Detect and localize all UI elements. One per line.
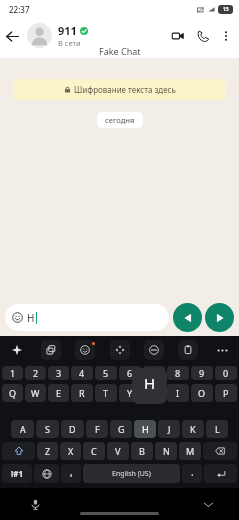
button[interactable]: Clipboard [178, 340, 198, 360]
staticText: D [69, 423, 76, 435]
staticText: Z [45, 445, 51, 457]
button[interactable]: P [215, 384, 237, 402]
staticText: Q [9, 387, 17, 399]
button[interactable]: 5 [95, 366, 117, 380]
staticText: G [118, 423, 125, 435]
staticText: J [168, 423, 171, 435]
button[interactable]: One-hand [144, 340, 164, 360]
button[interactable]: 8 [167, 366, 189, 380]
button[interactable]: A [11, 420, 34, 438]
staticText: A [20, 423, 26, 435]
staticText: 9 [199, 367, 205, 379]
button[interactable]: English (US) [83, 464, 180, 483]
staticText: W [31, 387, 40, 399]
button[interactable]: Resize [110, 340, 130, 360]
button[interactable]: J [158, 420, 180, 438]
button[interactable]: L [206, 420, 228, 438]
staticText: Fake Chat [99, 45, 141, 57]
button[interactable]: E [48, 384, 69, 402]
button[interactable]: O [191, 384, 213, 402]
button[interactable]: 4 [71, 366, 93, 380]
button[interactable]: 911 [58, 23, 165, 48]
button[interactable]: 2 [25, 366, 46, 380]
staticText: 0 [223, 367, 229, 379]
staticText: 2 [33, 367, 39, 379]
button[interactable]: 3 [48, 366, 69, 380]
staticText: B [139, 445, 145, 457]
button[interactable]: Change language [34, 464, 59, 483]
staticText: 8 [175, 367, 181, 379]
staticText: I [176, 387, 180, 399]
staticText: O [198, 387, 206, 399]
button[interactable]: More options [215, 25, 236, 46]
button[interactable]: I [167, 384, 189, 402]
button[interactable]: , [61, 464, 81, 483]
staticText: N [163, 445, 170, 457]
staticText: F [95, 423, 100, 435]
staticText: Шифрование текста здесь [74, 84, 176, 95]
staticText: T [103, 387, 109, 399]
button[interactable]: R [71, 384, 93, 402]
button[interactable]: Back [0, 24, 24, 48]
button[interactable]: V [107, 442, 129, 460]
button[interactable]: X [60, 442, 81, 460]
staticText: E [56, 387, 62, 399]
button[interactable]: Send [205, 303, 234, 332]
staticText: 15 [223, 6, 229, 13]
button[interactable]: Previous [173, 303, 202, 332]
button[interactable]: Z [37, 442, 58, 460]
button[interactable]: 0 [215, 366, 237, 380]
button[interactable]: . [182, 464, 202, 483]
staticText: S [45, 423, 50, 435]
button[interactable]: 7 [143, 366, 165, 380]
button[interactable]: Shift [2, 442, 35, 460]
button[interactable]: More [212, 340, 232, 360]
button[interactable]: H [134, 420, 156, 438]
button[interactable]: N [155, 442, 177, 460]
button[interactable]: S [36, 420, 59, 438]
button[interactable]: G [110, 420, 132, 438]
button[interactable]: Video call [165, 23, 190, 48]
button[interactable]: 6 [119, 366, 141, 380]
button[interactable]: Voice input [26, 495, 44, 513]
button[interactable]: Backspace [203, 442, 237, 460]
button[interactable]: Enter [204, 464, 237, 483]
staticText: 1 [10, 367, 16, 379]
button[interactable]: Q [2, 384, 23, 402]
button[interactable]: B [131, 442, 153, 460]
button[interactable]: 9 [191, 366, 213, 380]
staticText: K [190, 423, 196, 435]
button[interactable]: D [61, 420, 84, 438]
button[interactable]: Hide keyboard [199, 495, 217, 513]
staticText: P [223, 387, 229, 399]
staticText: 5 [103, 367, 109, 379]
button[interactable]: Call [190, 23, 215, 48]
button[interactable]: Шифрование текста здесь [13, 79, 226, 100]
button[interactable]: H [5, 304, 169, 331]
button[interactable]: M [179, 442, 201, 460]
staticText: 911 [58, 23, 77, 38]
button[interactable]: Emoji [75, 340, 95, 360]
staticText: U [151, 387, 158, 399]
button[interactable]: !#1 [2, 464, 32, 483]
staticText: , [70, 465, 73, 479]
button[interactable]: сегодня [97, 112, 143, 128]
staticText: 4 [79, 367, 85, 379]
button[interactable]: K [182, 420, 204, 438]
button[interactable]: C [83, 442, 105, 460]
staticText: !#1 [11, 468, 23, 479]
staticText: . [191, 465, 194, 479]
staticText: 6 [127, 367, 133, 379]
staticText: C [91, 445, 97, 457]
button[interactable]: GIF [41, 340, 61, 360]
staticText: V [115, 445, 121, 457]
button[interactable]: W [25, 384, 46, 402]
button[interactable]: F [86, 420, 108, 438]
button[interactable]: 1 [2, 366, 23, 380]
button[interactable]: Assist [7, 340, 27, 360]
staticText: English (US) [112, 469, 151, 479]
button[interactable]: Y [119, 384, 141, 402]
button[interactable]: U [143, 384, 165, 402]
button[interactable]: T [95, 384, 117, 402]
